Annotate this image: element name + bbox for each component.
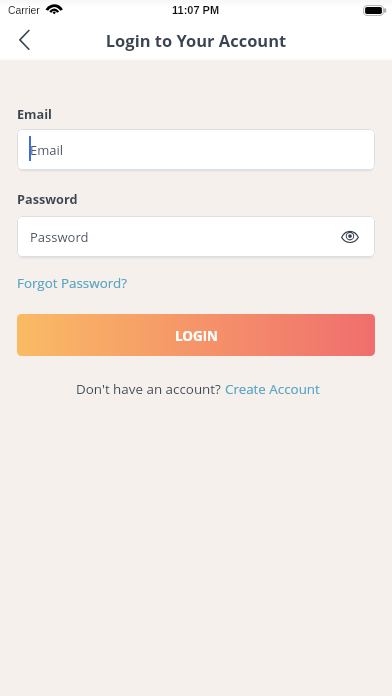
button[interactable]: Email (17, 129, 375, 170)
button[interactable]: Password (17, 216, 375, 257)
staticText: Login to Your Account (0, 29, 392, 51)
staticText: LOGIN (175, 327, 218, 345)
button[interactable]: Back (6, 22, 42, 58)
staticText: Email (30, 141, 64, 159)
staticText: Carrier (8, 5, 40, 17)
staticText: Create Account (225, 380, 320, 398)
button[interactable]: Show password (337, 224, 363, 250)
staticText: Don't have an account? (76, 380, 225, 398)
staticText: 11:07 PM (172, 4, 220, 16)
staticText: Forgot Password? (17, 274, 127, 292)
button[interactable]: Forgot Password? (17, 274, 127, 292)
button[interactable]: LOGIN (17, 314, 375, 356)
button[interactable]: Create Account (225, 380, 320, 398)
staticText: Password (30, 228, 89, 246)
staticText: Password (17, 190, 78, 207)
staticText: Email (17, 105, 52, 122)
